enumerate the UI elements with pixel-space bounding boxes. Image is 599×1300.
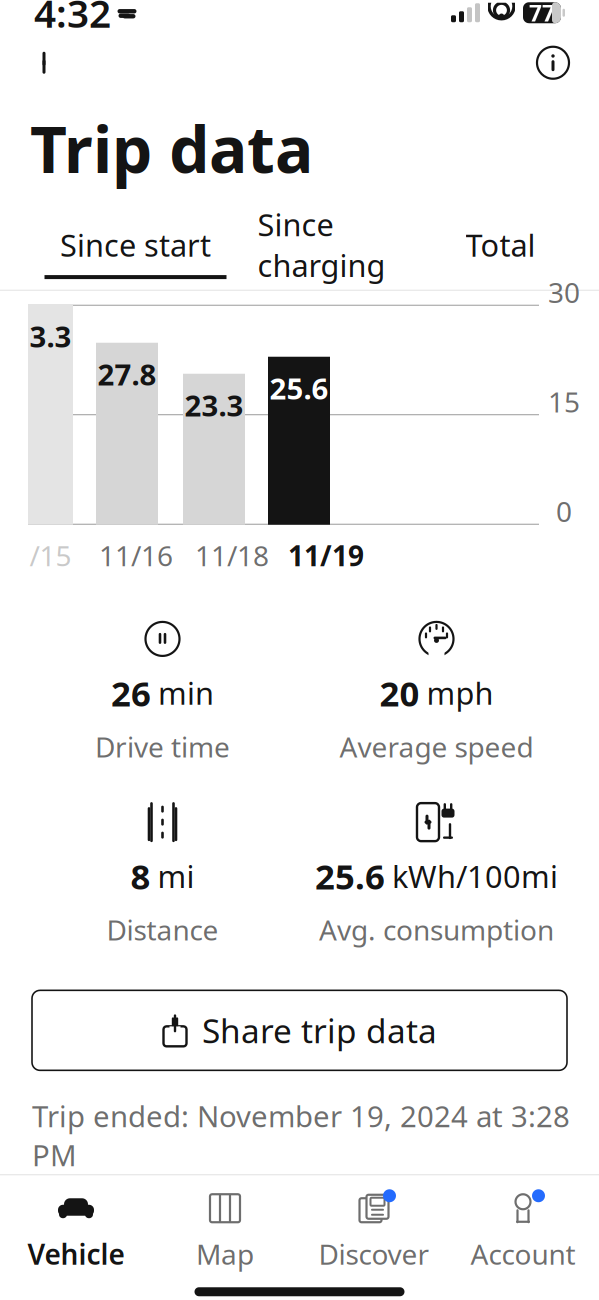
staticText: kWh/100mi <box>392 856 558 896</box>
staticText: min <box>158 673 214 713</box>
staticText: Avg. consumption <box>319 911 554 948</box>
button[interactable]: Back <box>22 39 70 87</box>
staticText: 11/16 <box>99 537 173 574</box>
staticText: /15 <box>29 537 71 574</box>
staticText: 25.6 <box>315 853 385 899</box>
staticText: 15 <box>548 383 580 420</box>
staticText: 11/18 <box>195 537 269 574</box>
button[interactable]: Vehicle <box>1 1189 150 1272</box>
staticText: 3.3 <box>29 317 71 356</box>
staticText: mi <box>157 856 194 896</box>
button[interactable]: Account <box>448 1189 597 1272</box>
staticText: 8 <box>130 853 150 899</box>
staticText: Since charging <box>257 204 385 285</box>
staticText: 26 <box>111 670 151 716</box>
staticText: mph <box>426 673 493 713</box>
staticText: Total <box>465 224 535 265</box>
staticText: 11/19 <box>288 537 364 574</box>
button[interactable]: Map <box>150 1189 299 1272</box>
button[interactable]: Since charging <box>226 204 416 299</box>
staticText: Account <box>470 1235 575 1272</box>
staticText: 4:32 <box>34 0 111 38</box>
staticText: Map <box>196 1235 254 1272</box>
staticText: Vehicle <box>27 1235 124 1272</box>
staticText: 23.3 <box>184 386 243 425</box>
button[interactable]: Since start <box>44 224 226 279</box>
staticText: Distance <box>106 911 218 948</box>
staticText: Average speed <box>339 728 533 765</box>
staticText: Trip ended: November 19, 2024 at 3:28 PM <box>32 1096 570 1174</box>
staticText: Discover <box>318 1235 429 1272</box>
staticText: 20 <box>379 670 419 716</box>
staticText: Since start <box>60 224 211 265</box>
button[interactable]: Total <box>416 224 584 279</box>
button[interactable]: Information <box>529 39 577 87</box>
staticText: Trip data <box>30 106 313 191</box>
staticText: 77 <box>529 0 555 28</box>
button[interactable]: Share trip data <box>32 990 567 1070</box>
staticText: 0 <box>556 493 572 530</box>
staticText: 27.8 <box>97 355 156 394</box>
button[interactable]: Discover <box>299 1189 448 1272</box>
staticText: 25.6 <box>269 369 328 408</box>
staticText: Share trip data <box>202 1008 437 1052</box>
staticText: Drive time <box>95 728 230 765</box>
staticText: 30 <box>548 274 580 311</box>
